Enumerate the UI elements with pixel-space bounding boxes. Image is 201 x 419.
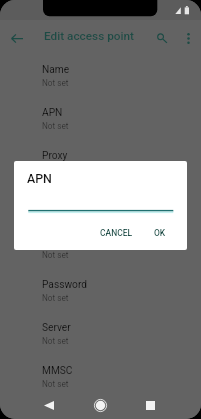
button[interactable]: Port xyxy=(0,185,201,228)
button[interactable]: Recent apps xyxy=(138,393,162,417)
button[interactable]: CANCEL xyxy=(92,223,140,243)
staticText: CANCEL xyxy=(100,228,133,238)
staticText: MMSC xyxy=(42,365,73,377)
button[interactable]: Home xyxy=(88,393,112,417)
button[interactable]: OK xyxy=(147,223,172,243)
button[interactable]: Back xyxy=(37,393,61,417)
button[interactable]: APN xyxy=(0,99,201,142)
staticText: Password xyxy=(42,279,87,291)
staticText: Proxy xyxy=(42,150,68,162)
staticText: Not set xyxy=(42,336,69,346)
button[interactable]: Proxy xyxy=(0,142,201,185)
staticText: Not set xyxy=(42,379,69,389)
staticText: Not set xyxy=(42,250,69,260)
staticText: Not set xyxy=(42,207,69,217)
staticText: OK xyxy=(154,228,166,238)
button[interactable]: Username xyxy=(0,228,201,271)
button[interactable]: MMSC xyxy=(0,357,201,400)
staticText: Name xyxy=(42,64,70,76)
button[interactable]: More options xyxy=(176,26,200,50)
button[interactable]: Server xyxy=(0,314,201,357)
staticText: Not set xyxy=(42,78,69,88)
staticText: Not set xyxy=(42,293,69,303)
button[interactable]: Search xyxy=(150,26,174,50)
staticText: Server xyxy=(42,322,71,334)
staticText: Edit access point xyxy=(44,29,134,43)
button[interactable]: Password xyxy=(0,271,201,314)
staticText: APN xyxy=(42,107,63,119)
button[interactable]: Navigate up xyxy=(5,26,29,50)
staticText: Not set xyxy=(42,121,69,131)
button[interactable]: Name xyxy=(0,56,201,99)
staticText: APN xyxy=(27,171,52,186)
